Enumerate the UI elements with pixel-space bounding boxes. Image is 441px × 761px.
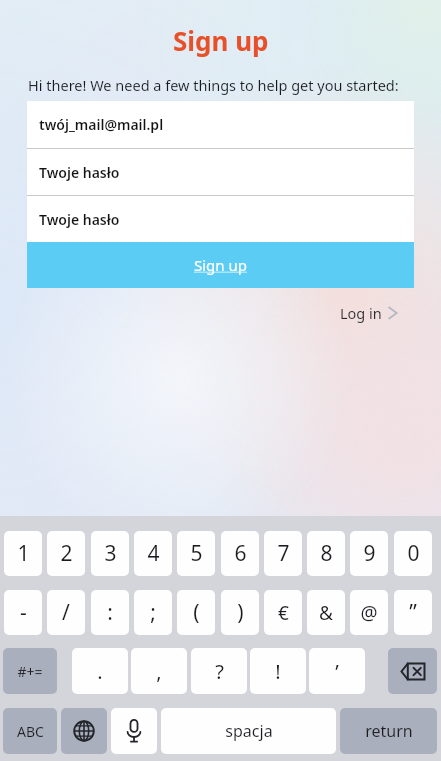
staticText: ABC [17, 722, 44, 741]
staticText: spacja [225, 720, 273, 742]
button[interactable]: Twoje hasło [27, 149, 414, 195]
staticText: & [319, 600, 333, 626]
button[interactable]: #+= [3, 648, 57, 694]
button[interactable]: ! [250, 648, 306, 694]
staticText: ( [193, 598, 200, 627]
button[interactable]: Backspace [388, 648, 437, 694]
button[interactable]: return [340, 708, 437, 754]
staticText: 6 [234, 539, 247, 568]
staticText: € [278, 600, 289, 626]
button[interactable]: 7 [264, 531, 302, 576]
staticText: 9 [363, 539, 376, 568]
staticText: 1 [17, 539, 30, 568]
staticText: #+= [17, 662, 43, 681]
button[interactable]: . [72, 648, 128, 694]
staticText: Twoje hasło [39, 163, 120, 182]
staticText: ” [409, 598, 417, 627]
staticText: twój_mail@mail.pl [39, 115, 164, 134]
staticText: Sign up [173, 23, 269, 58]
button[interactable]: ’ [309, 648, 365, 694]
button[interactable]: , [131, 648, 187, 694]
button[interactable]: spacja [161, 708, 336, 754]
staticText: ; [150, 598, 156, 627]
staticText: 8 [320, 539, 333, 568]
button[interactable]: 1 [4, 531, 42, 576]
button[interactable]: 4 [134, 531, 172, 576]
button[interactable]: Change keyboard [61, 708, 107, 754]
staticText: 5 [190, 539, 203, 568]
staticText: - [20, 598, 27, 627]
button[interactable]: Twoje hasło [27, 196, 414, 242]
staticText: Twoje hasło [39, 210, 120, 229]
button[interactable]: ) [221, 590, 259, 635]
button[interactable]: ; [134, 590, 172, 635]
staticText: ? [215, 658, 224, 685]
staticText: Hi there! We need a few things to help g… [28, 75, 399, 95]
staticText: 3 [104, 539, 117, 568]
button[interactable]: Voice input [111, 708, 157, 754]
button[interactable]: Sign up [27, 242, 414, 288]
button[interactable]: & [307, 590, 345, 635]
button[interactable]: ? [191, 648, 247, 694]
button[interactable]: ( [177, 590, 215, 635]
staticText: ! [275, 658, 281, 685]
staticText: : [107, 598, 113, 627]
button[interactable]: 2 [47, 531, 85, 576]
button[interactable]: 3 [91, 531, 129, 576]
staticText: Sign up [194, 255, 247, 275]
button[interactable]: ABC [3, 708, 57, 754]
staticText: 2 [60, 539, 73, 568]
button[interactable]: 6 [221, 531, 259, 576]
staticText: 4 [147, 539, 160, 568]
button[interactable]: 0 [394, 531, 432, 576]
staticText: / [62, 598, 70, 627]
button[interactable]: 9 [350, 531, 388, 576]
staticText: Log in [340, 303, 382, 323]
staticText: @ [360, 600, 378, 626]
staticText: ’ [335, 658, 339, 685]
button[interactable]: / [47, 590, 85, 635]
staticText: . [97, 658, 103, 685]
button[interactable]: twój_mail@mail.pl [27, 101, 414, 148]
staticText: , [156, 658, 162, 685]
staticText: 0 [407, 539, 420, 568]
button[interactable]: Log in [340, 300, 398, 326]
button[interactable]: - [4, 590, 42, 635]
staticText: 7 [277, 539, 290, 568]
button[interactable]: 8 [307, 531, 345, 576]
button[interactable]: ” [394, 590, 432, 635]
button[interactable]: 5 [177, 531, 215, 576]
button[interactable]: @ [350, 590, 388, 635]
button[interactable]: € [264, 590, 302, 635]
button[interactable]: : [91, 590, 129, 635]
staticText: return [365, 720, 413, 742]
staticText: ) [237, 598, 244, 627]
